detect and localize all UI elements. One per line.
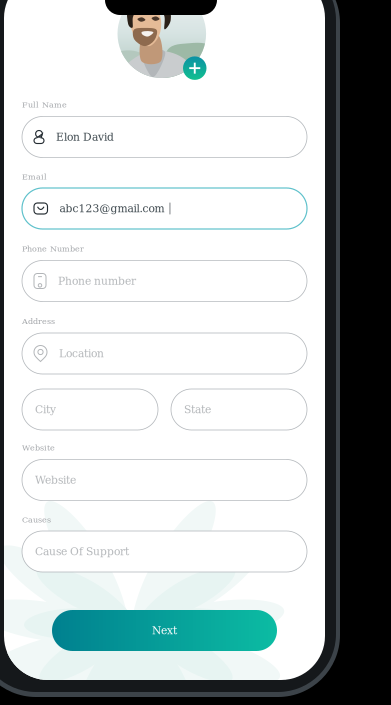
button[interactable]: abc123@gmail.com (22, 188, 307, 229)
button[interactable]: State (171, 389, 307, 430)
button[interactable]: Elon David (22, 116, 307, 157)
button[interactable]: City (22, 389, 158, 430)
button[interactable]: Add photo (183, 56, 206, 80)
staticText: Phone number (58, 275, 136, 287)
staticText: Location (59, 347, 104, 360)
staticText: Elon David (56, 131, 114, 143)
staticText: Next (152, 624, 177, 637)
staticText: Cause Of Support (35, 545, 129, 558)
button[interactable]: Phone number (22, 260, 307, 301)
staticText: Address (22, 316, 55, 326)
staticText: State (184, 403, 211, 416)
staticText: Website (35, 474, 76, 486)
staticText: Full Name (22, 100, 67, 109)
button[interactable]: Website (22, 459, 307, 500)
staticText: Email (22, 172, 47, 181)
staticText: abc123@gmail.com (59, 202, 164, 215)
staticText: Phone Number (22, 244, 84, 253)
staticText: City (35, 403, 56, 416)
staticText: Causes (22, 515, 51, 524)
staticText: Website (22, 443, 55, 452)
button[interactable]: Location (22, 333, 307, 374)
button[interactable]: Next (52, 610, 277, 651)
button[interactable]: Cause Of Support (22, 531, 307, 572)
